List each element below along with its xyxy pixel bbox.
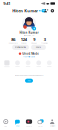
staticText: Stories xyxy=(38,125,43,127)
staticText: 9 xyxy=(33,37,35,42)
staticText: 124 xyxy=(21,37,27,42)
staticText: Share xyxy=(36,46,41,48)
staticText: 86 xyxy=(11,37,15,42)
staticText: 9:41 xyxy=(3,1,10,6)
button[interactable]: Add friends xyxy=(44,9,48,13)
button[interactable]: 86 xyxy=(8,37,18,44)
button[interactable]: Story highlight xyxy=(33,60,44,67)
button[interactable]: Story highlight xyxy=(12,60,23,67)
staticText: Spotlight xyxy=(50,125,55,127)
staticText: 3 xyxy=(44,37,46,42)
staticText: Trophies xyxy=(41,42,48,44)
staticText: Hiten Kumar xyxy=(19,31,38,34)
button[interactable]: Add xyxy=(25,79,33,83)
button[interactable]: 3 xyxy=(39,37,50,44)
button[interactable]: Spotlight xyxy=(46,117,58,129)
staticText: Streaks xyxy=(31,42,37,44)
staticText: Chat xyxy=(16,125,19,127)
button[interactable]: 9 xyxy=(29,37,39,44)
button[interactable]: Profile sharing xyxy=(12,45,29,50)
staticText: hitenkumar_07 xyxy=(23,35,34,36)
staticText: Ghost Mode xyxy=(22,52,39,55)
staticText: Stories and snaps you post show up here xyxy=(14,74,43,76)
staticText: Add xyxy=(27,80,30,82)
button[interactable]: Camera xyxy=(23,117,35,129)
staticText: + Add Twitter Studio xyxy=(23,56,35,58)
button[interactable]: + Add Twitter Studio xyxy=(23,56,35,58)
button[interactable]: Story highlight xyxy=(44,60,55,67)
staticText: Profile sharing xyxy=(15,46,26,48)
button[interactable]: Chat xyxy=(12,117,23,129)
button[interactable]: Story highlight xyxy=(23,60,33,67)
staticText: Snap Score xyxy=(9,42,18,44)
button[interactable]: Map xyxy=(0,117,12,129)
button[interactable]: Snapcode xyxy=(41,9,46,12)
button[interactable]: 124 xyxy=(18,37,29,44)
staticText: Friends xyxy=(21,42,27,44)
button[interactable]: Stories xyxy=(35,117,46,129)
staticText: Camera xyxy=(26,125,32,127)
button[interactable]: Share xyxy=(31,45,46,50)
staticText: Hiten Kumar xyxy=(12,8,38,13)
staticText: Map xyxy=(4,125,7,127)
button[interactable]: Add to story xyxy=(2,60,12,67)
button[interactable]: Settings xyxy=(50,9,54,13)
